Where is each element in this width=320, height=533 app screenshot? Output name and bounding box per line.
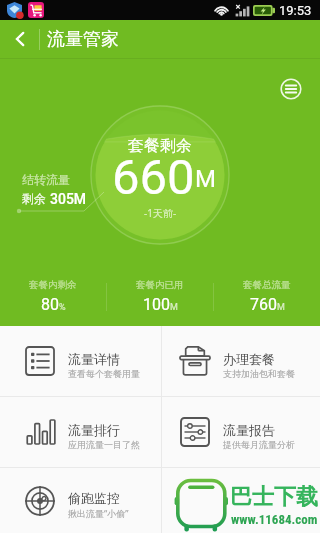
staticText: 提供每月流量分析 (223, 439, 295, 450)
staticText: 办理套餐 (223, 351, 275, 367)
staticText: 19:53 (279, 3, 312, 18)
staticText: 支持加油包和套餐 (223, 368, 295, 379)
button[interactable]: 套餐内已用 (107, 279, 213, 315)
staticText: 流量排行 (68, 422, 120, 438)
staticText: 套餐总流量 (243, 279, 291, 291)
staticText: % (59, 302, 66, 313)
button[interactable]: Back (0, 20, 39, 58)
button[interactable]: 流量详情 (0, 326, 161, 396)
staticText: www.11684.com (231, 512, 318, 527)
button[interactable]: 办理套餐 (162, 326, 320, 396)
staticText: 套餐内已用 (136, 279, 184, 291)
staticText: 揪出流量“小偷” (68, 507, 129, 519)
staticText: 偷跑监控 (68, 490, 120, 506)
staticText: 760 (250, 295, 277, 314)
staticText: 流量报告 (223, 422, 275, 438)
staticText: M (277, 302, 285, 313)
staticText: -1天前- (144, 206, 177, 220)
staticText: 结转流量 (22, 172, 70, 187)
button[interactable]: 套餐内剩余 (0, 279, 106, 315)
button[interactable]: 偷跑监控 (0, 468, 161, 533)
staticText: 剩余 (22, 190, 50, 206)
staticText: 查看每个套餐用量 (68, 368, 140, 379)
button[interactable]: 套餐总流量 (214, 279, 320, 315)
staticText: 应用流量一目了然 (68, 439, 140, 450)
staticText: 巴士下载 (230, 483, 318, 511)
staticText: 305M (50, 191, 87, 207)
button[interactable]: 流量排行 (0, 397, 161, 467)
staticText: 流量详情 (68, 351, 120, 367)
staticText: 套餐剩余 (128, 136, 192, 156)
button[interactable]: 流量报告 (162, 397, 320, 467)
staticText: 100 (143, 295, 170, 314)
staticText: M (195, 165, 216, 193)
button[interactable]: Menu (280, 78, 302, 100)
staticText: 流量管家 (47, 28, 119, 51)
staticText: M (170, 302, 178, 313)
staticText: 80 (41, 295, 59, 314)
staticText: 660 (112, 149, 195, 197)
staticText: 套餐内剩余 (29, 279, 77, 291)
